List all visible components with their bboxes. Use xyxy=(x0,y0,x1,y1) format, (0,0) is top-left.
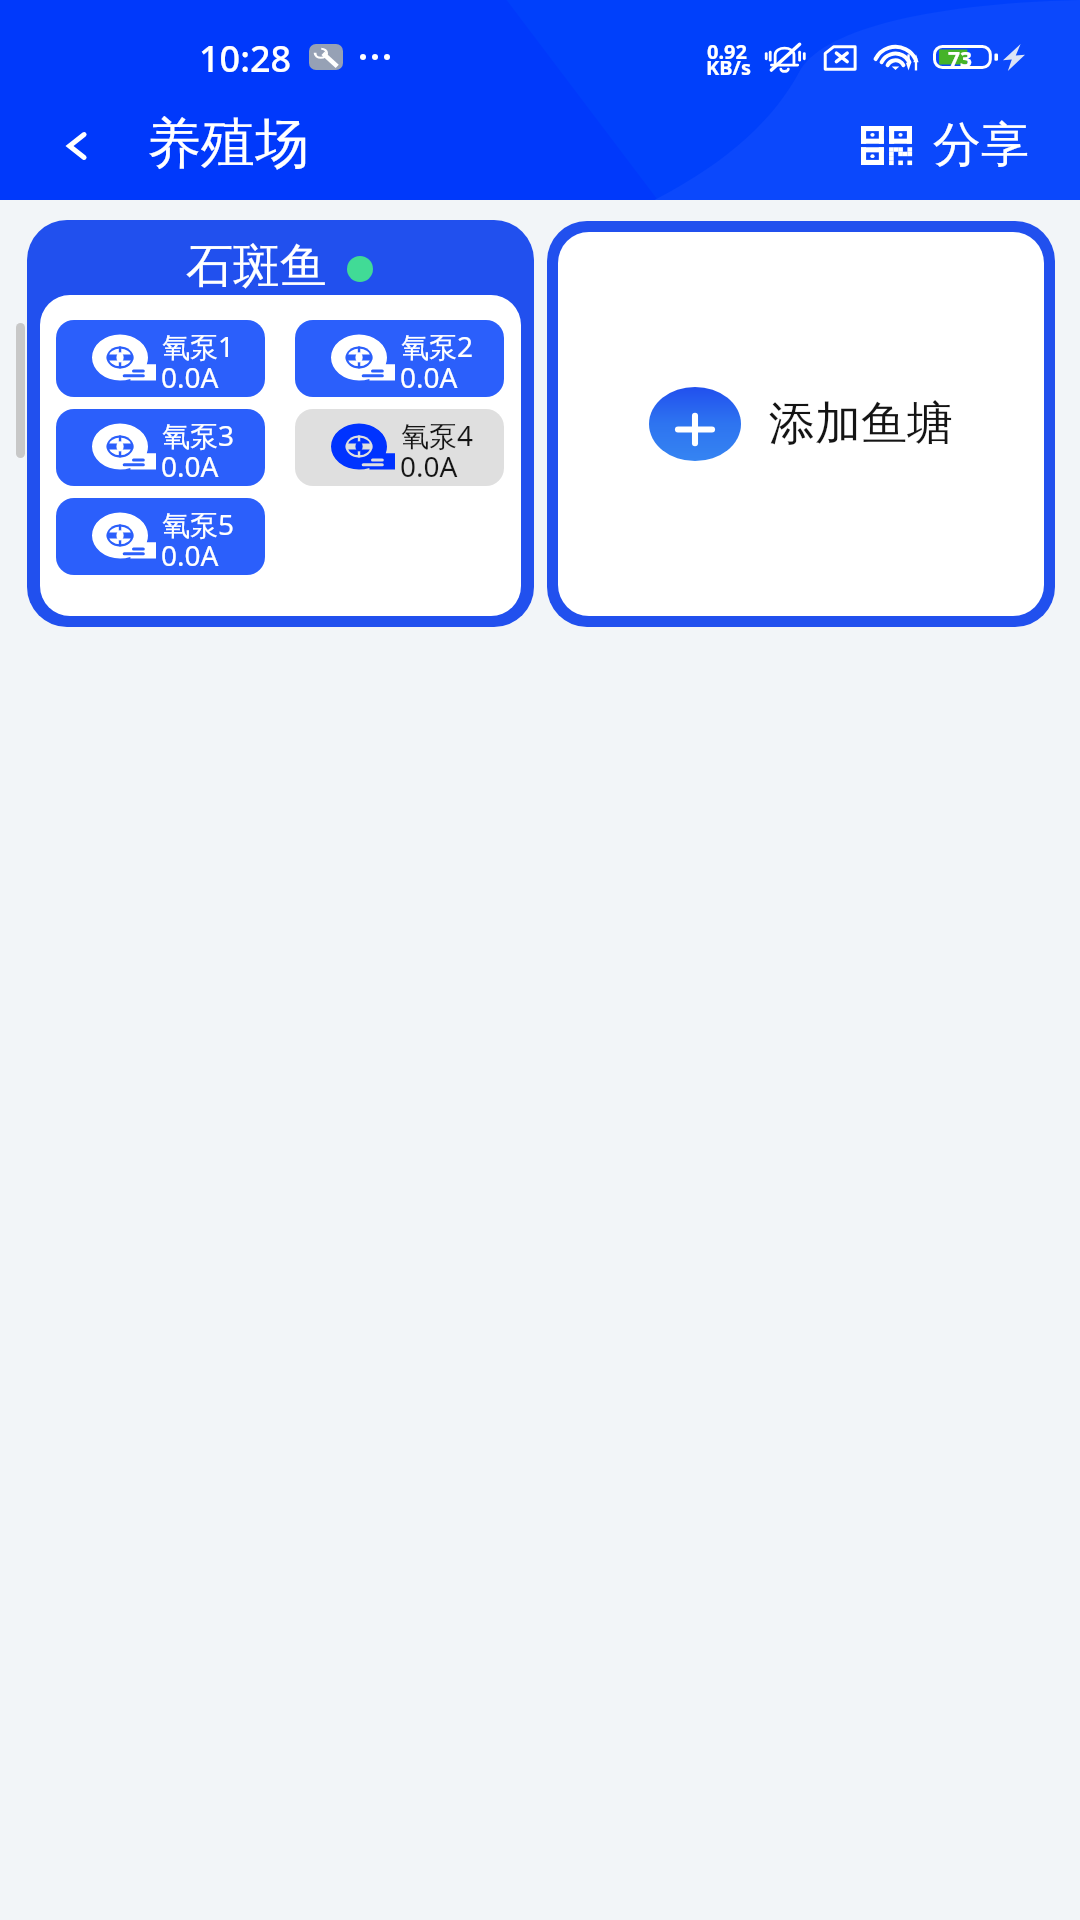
staticText: 养殖场 xyxy=(147,110,309,178)
staticText: 石斑鱼 xyxy=(186,237,327,296)
staticText: 0.0A xyxy=(161,358,219,396)
button[interactable]: 氧泵3 xyxy=(56,409,265,486)
staticText: 氧泵4 xyxy=(401,416,474,454)
staticText: 0.92 xyxy=(707,38,747,65)
staticText: 0.0A xyxy=(400,358,458,396)
staticText: 氧泵3 xyxy=(162,416,235,454)
staticText: 添加鱼塘 xyxy=(769,395,953,453)
staticText: 0.0A xyxy=(161,536,219,574)
staticText: 氧泵1 xyxy=(162,327,235,365)
button[interactable]: 添加鱼塘 xyxy=(558,232,1044,616)
button[interactable]: 分享 xyxy=(861,103,1029,187)
button[interactable]: 氧泵1 xyxy=(56,320,265,397)
button[interactable]: 氧泵5 xyxy=(56,498,265,575)
button[interactable]: 氧泵4 xyxy=(295,409,504,486)
staticText: 0.0A xyxy=(400,447,458,485)
staticText: KB/s xyxy=(706,54,751,81)
button[interactable]: Back xyxy=(30,90,118,200)
staticText: 氧泵2 xyxy=(401,327,474,365)
staticText: 73 xyxy=(948,45,973,74)
button[interactable]: 氧泵2 xyxy=(295,320,504,397)
button[interactable]: 石斑鱼 xyxy=(27,220,534,627)
staticText: 10:28 xyxy=(199,34,292,83)
staticText: 0.0A xyxy=(161,447,219,485)
staticText: 分享 xyxy=(933,115,1029,175)
staticText: 氧泵5 xyxy=(162,505,235,543)
